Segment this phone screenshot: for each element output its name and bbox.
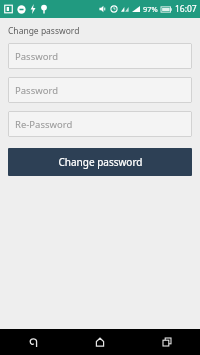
staticText: Change password: [8, 25, 80, 37]
button[interactable]: Password: [8, 77, 192, 103]
button[interactable]: Re-Password: [8, 111, 192, 137]
staticText: Password: [15, 84, 58, 97]
button[interactable]: Password: [8, 43, 192, 69]
button[interactable]: Home: [66, 329, 133, 355]
staticText: Re-Password: [15, 118, 73, 131]
staticText: Password: [15, 50, 58, 63]
button[interactable]: Recent apps: [133, 329, 200, 355]
staticText: Change password: [58, 155, 143, 169]
staticText: 16:07: [175, 3, 197, 15]
button[interactable]: Back: [0, 329, 66, 355]
staticText: 97%: [143, 4, 158, 14]
button[interactable]: Change password: [8, 148, 192, 176]
